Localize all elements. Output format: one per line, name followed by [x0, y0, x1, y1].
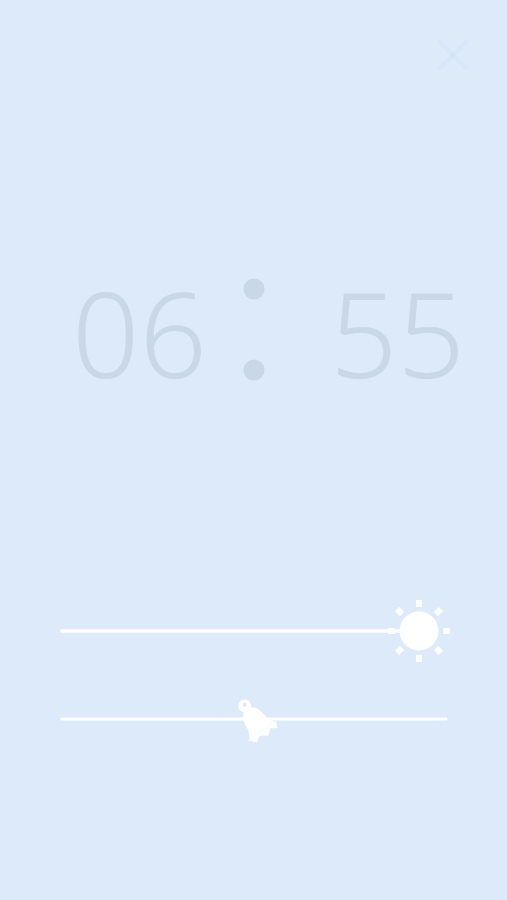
- button[interactable]: Brightness: [40, 594, 480, 668]
- staticText: 55: [330, 252, 465, 392]
- button[interactable]: Volume: [40, 682, 480, 756]
- staticText: 06: [72, 252, 207, 392]
